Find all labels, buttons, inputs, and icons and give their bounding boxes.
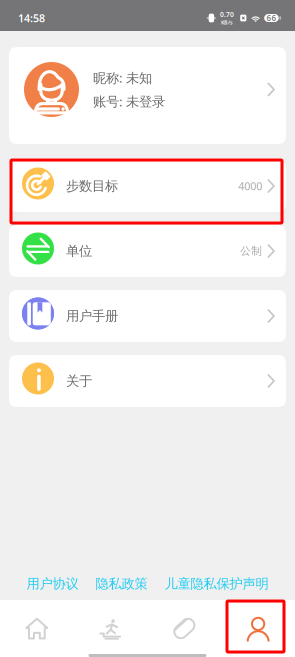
button[interactable]: 儿童隐私保护声明: [164, 576, 268, 592]
staticText: 儿童隐私保护声明: [164, 576, 268, 592]
staticText: 单位: [66, 243, 92, 259]
button[interactable]: 昵称: 未知: [9, 47, 286, 144]
button[interactable]: 首页: [0, 600, 74, 657]
staticText: 用户手册: [66, 308, 118, 324]
button[interactable]: 隐私政策: [95, 576, 147, 592]
staticText: 昵称: 未知: [93, 69, 152, 86]
button[interactable]: 我的: [221, 600, 295, 657]
staticText: 66: [266, 13, 276, 23]
staticText: 步数目标: [66, 178, 118, 194]
staticText: 关于: [66, 373, 92, 389]
staticText: 0.70: [220, 10, 234, 19]
button[interactable]: 胶囊: [147, 600, 221, 657]
staticText: 隐私政策: [95, 576, 147, 592]
staticText: 账号: 未登录: [93, 92, 165, 110]
staticText: 14:58: [18, 11, 45, 25]
staticText: 公制: [240, 244, 262, 257]
button[interactable]: 关于: [9, 355, 286, 407]
button[interactable]: 步数目标: [9, 160, 286, 212]
button[interactable]: 单位: [9, 225, 286, 277]
button[interactable]: 运动: [74, 600, 148, 657]
staticText: KB/s: [221, 19, 233, 26]
staticText: 4000: [238, 179, 262, 193]
staticText: 用户协议: [26, 576, 78, 592]
button[interactable]: 用户手册: [9, 290, 286, 342]
button[interactable]: 用户协议: [26, 576, 78, 592]
